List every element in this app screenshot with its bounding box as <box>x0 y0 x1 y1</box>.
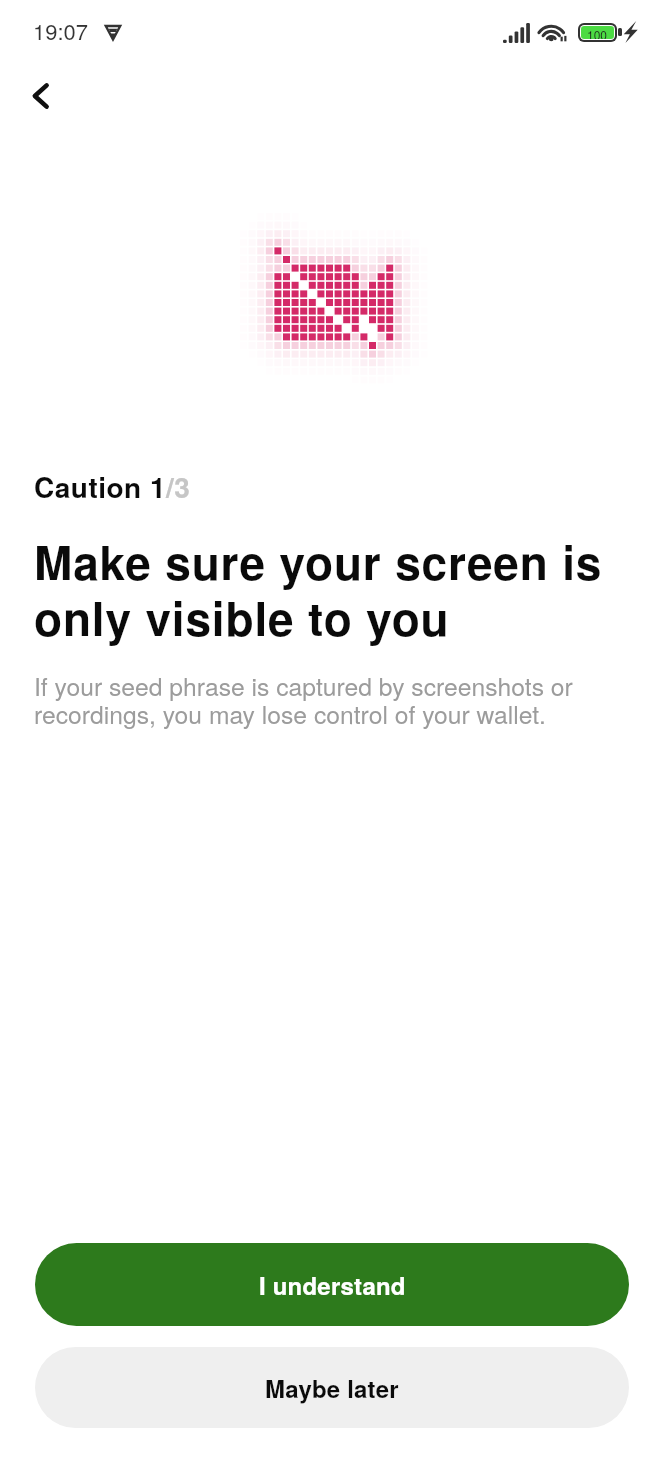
staticText: 19:07 <box>33 18 89 46</box>
button[interactable]: I understand <box>35 1243 629 1326</box>
staticText: I understand <box>259 1268 406 1302</box>
button[interactable]: Back <box>16 71 65 120</box>
staticText: If your seed phrase is captured by scree… <box>34 674 594 730</box>
staticText: Maybe later <box>265 1371 399 1405</box>
staticText: Caution 1/3 <box>34 471 191 505</box>
staticText: Make sure your screen is only visible to… <box>34 536 614 648</box>
button[interactable]: Maybe later <box>35 1347 629 1428</box>
staticText: 100 <box>587 26 608 39</box>
